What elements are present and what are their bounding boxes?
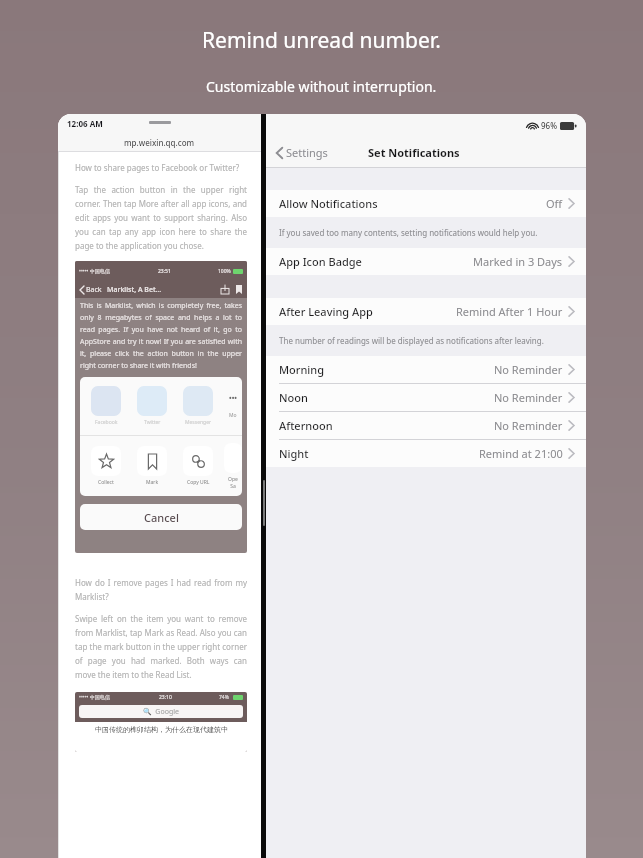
button[interactable]: Allow Notifications <box>266 190 586 217</box>
staticText: How to share pages to Facebook or Twitte… <box>75 162 247 173</box>
staticText: Mo <box>229 412 237 419</box>
staticText: Allow Notifications <box>279 196 378 211</box>
button[interactable]: Morning <box>266 356 586 383</box>
staticText: If you saved too many contents, setting … <box>279 227 538 238</box>
staticText: 96% <box>541 120 557 131</box>
staticText: Settings <box>286 145 328 160</box>
button[interactable]: Mark <box>132 446 172 486</box>
staticText: ••• <box>229 394 237 404</box>
staticText: ••••• 中国电信 <box>79 268 112 275</box>
staticText: No Reminder <box>494 362 563 377</box>
staticText: 100% <box>218 268 233 275</box>
staticText: Copy URL <box>187 479 210 486</box>
staticText: Back <box>86 285 102 295</box>
staticText: 🔍 Google <box>143 707 179 717</box>
staticText: Customizable without interruption. <box>206 77 437 96</box>
staticText: No Reminder <box>494 390 563 405</box>
staticText: Collect <box>98 479 114 486</box>
staticText: Off <box>546 196 563 211</box>
staticText: Marklist, A Bet… <box>107 285 162 295</box>
staticText: This is Marklist, which is completely fr… <box>80 301 242 370</box>
staticText: 23:10 <box>159 694 172 701</box>
staticText: Remind unread number. <box>202 26 441 55</box>
staticText: Messenger <box>185 419 212 426</box>
staticText: Marked in 3 Days <box>473 254 563 269</box>
button[interactable]: Noon <box>266 383 586 411</box>
staticText: mp.weixin.qq.com <box>124 137 195 148</box>
staticText: Cancel <box>144 510 179 525</box>
staticText: Remind After 1 Hour <box>456 304 563 319</box>
staticText: Afternoon <box>279 418 333 433</box>
staticText: Swipe left on the item you want to remov… <box>75 613 247 680</box>
staticText: Set Notifications <box>368 145 460 160</box>
staticText: 12:06 AM <box>67 118 103 129</box>
staticText: Remind at 21:00 <box>479 446 563 461</box>
staticText: 23:51 <box>158 268 171 275</box>
staticText: Tap the action button in the upper right… <box>75 184 247 251</box>
staticText: Noon <box>279 390 308 405</box>
staticText: App Icon Badge <box>279 254 362 269</box>
staticText: Ope Sa <box>228 476 238 489</box>
staticText: The number of readings will be displayed… <box>279 335 544 346</box>
staticText: 中国传统的榫卯结构，为什么在现代建筑中 <box>95 725 228 734</box>
button[interactable]: App Icon Badge <box>266 248 586 275</box>
staticText: How do I remove pages I had read from my… <box>75 577 247 602</box>
staticText: Morning <box>279 362 325 377</box>
button[interactable]: Copy URL <box>178 446 218 486</box>
button[interactable]: Collect <box>86 446 126 486</box>
button[interactable]: Night <box>266 439 586 467</box>
button[interactable]: Afternoon <box>266 411 586 439</box>
staticText: No Reminder <box>494 418 563 433</box>
staticText: Night <box>279 446 309 461</box>
staticText: Mark <box>146 479 159 486</box>
staticText: ••••• 中国电信 <box>79 694 112 701</box>
button[interactable]: After Leaving App <box>266 298 586 325</box>
staticText: Facebook <box>95 419 118 426</box>
staticText: Twitter <box>144 419 161 426</box>
button[interactable]: Settings <box>276 142 334 163</box>
staticText: 74% <box>219 694 231 701</box>
staticText: After Leaving App <box>279 304 373 319</box>
button[interactable]: Cancel <box>80 504 242 530</box>
